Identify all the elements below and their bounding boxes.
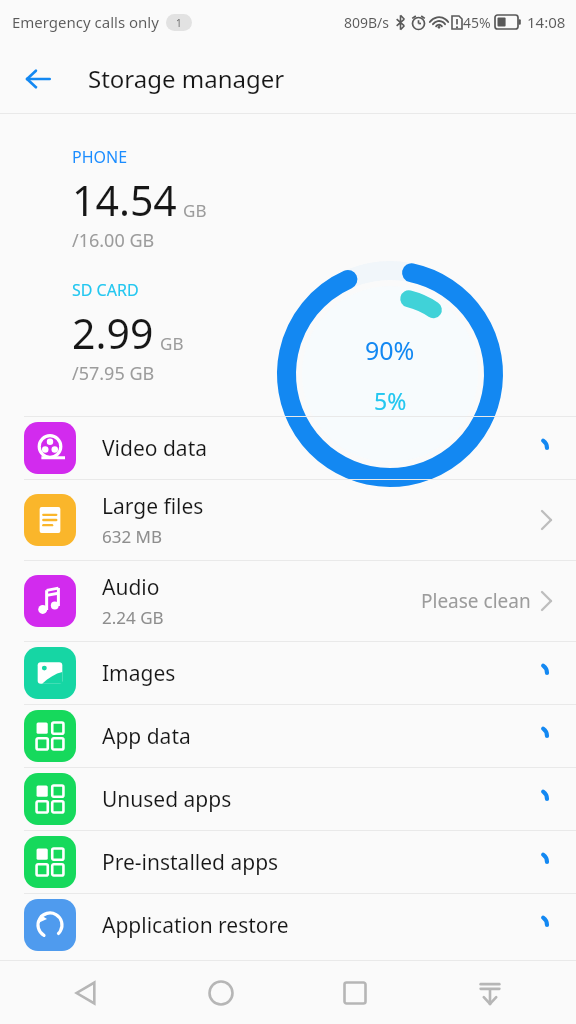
staticText: Unused apps: [102, 785, 232, 814]
button[interactable]: Images: [0, 642, 576, 704]
staticText: 45%: [463, 13, 491, 32]
staticText: 14:08: [527, 12, 566, 32]
staticText: Storage manager: [88, 62, 285, 95]
button[interactable]: Recents: [307, 961, 403, 1024]
staticText: Video data: [102, 434, 207, 463]
staticText: Pre-installed apps: [102, 848, 279, 877]
staticText: /57.95 GB: [72, 361, 155, 386]
button[interactable]: Audio: [0, 561, 576, 641]
staticText: 632 MB: [102, 525, 163, 548]
staticText: Large files: [102, 492, 204, 521]
button[interactable]: Home: [173, 961, 269, 1024]
button[interactable]: App data: [0, 705, 576, 767]
staticText: Images: [102, 659, 176, 688]
button[interactable]: Application restore: [0, 894, 576, 956]
staticText: GB: [160, 332, 184, 355]
button[interactable]: Pre-installed apps: [0, 831, 576, 893]
staticText: PHONE: [72, 146, 128, 168]
staticText: 2.24 GB: [102, 606, 164, 629]
button[interactable]: Video data: [0, 417, 576, 479]
staticText: 5%: [374, 385, 407, 416]
staticText: 14.54: [72, 172, 177, 228]
staticText: GB: [183, 199, 207, 222]
staticText: Application restore: [102, 911, 289, 940]
staticText: Audio: [102, 573, 160, 602]
staticText: /16.00 GB: [72, 228, 155, 253]
staticText: 2.99: [72, 305, 154, 361]
staticText: SD CARD: [72, 279, 139, 301]
button[interactable]: Large files: [0, 480, 576, 560]
staticText: App data: [102, 722, 191, 751]
staticText: 1: [176, 16, 182, 30]
button[interactable]: Back: [38, 961, 134, 1024]
button[interactable]: Hide navigation bar: [442, 961, 538, 1024]
staticText: 809B/s: [344, 13, 390, 32]
staticText: Please clean: [421, 588, 531, 614]
staticText: 90%: [365, 333, 415, 367]
staticText: Emergency calls only: [12, 12, 159, 32]
button[interactable]: Unused apps: [0, 768, 576, 830]
button[interactable]: Back: [14, 55, 62, 103]
